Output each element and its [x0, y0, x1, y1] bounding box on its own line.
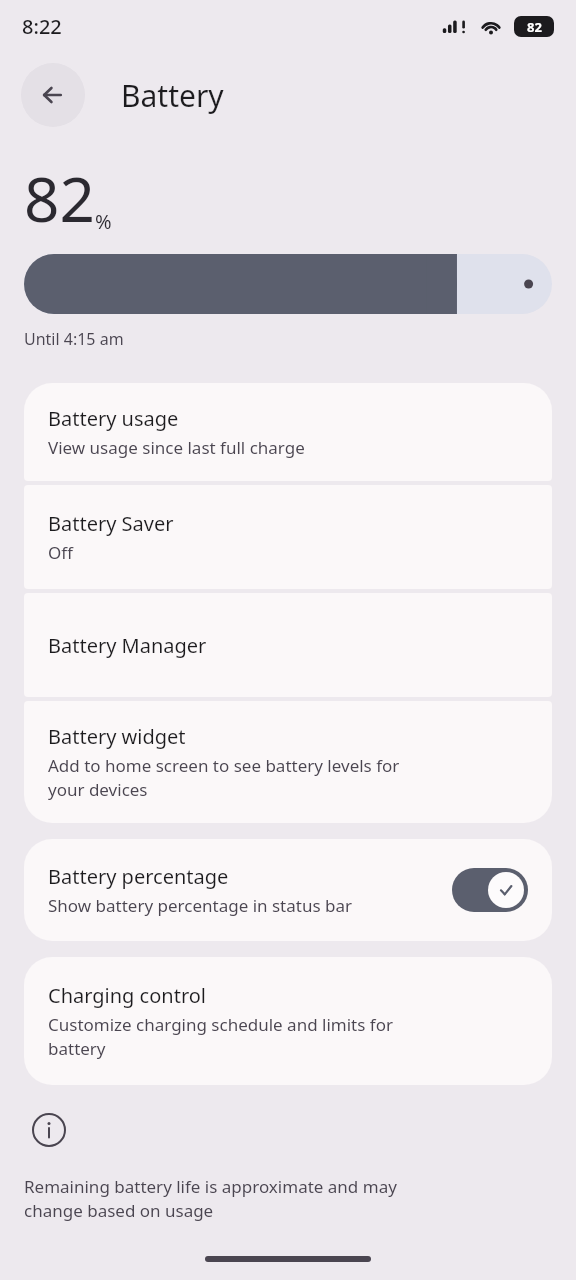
- button[interactable]: Battery widget: [24, 701, 552, 823]
- staticText: Battery widget: [48, 723, 186, 750]
- button[interactable]: Back: [21, 63, 85, 127]
- staticText: 82: [527, 18, 542, 36]
- button[interactable]: Battery usage: [24, 383, 552, 481]
- staticText: Battery usage: [48, 405, 179, 432]
- button[interactable]: Battery Saver: [24, 485, 552, 589]
- staticText: 8:22: [22, 13, 62, 40]
- staticText: Charging control: [48, 982, 206, 1009]
- staticText: Battery: [121, 75, 224, 116]
- staticText: Remaining battery life is approximate an…: [24, 1175, 397, 1222]
- staticText: Battery percentage: [48, 863, 229, 890]
- staticText: Customize charging schedule and limits f…: [48, 1013, 393, 1060]
- button[interactable]: Battery percentage toggle: [452, 868, 528, 912]
- staticText: Until 4:15 am: [24, 328, 124, 350]
- staticText: Show battery percentage in status bar: [48, 894, 352, 917]
- staticText: Battery Manager: [48, 632, 207, 659]
- button[interactable]: Charging control: [24, 957, 552, 1085]
- button[interactable]: Battery Manager: [24, 593, 552, 697]
- staticText: Add to home screen to see battery levels…: [48, 754, 400, 801]
- staticText: View usage since last full charge: [48, 436, 305, 459]
- staticText: %: [95, 208, 112, 235]
- staticText: Off: [48, 541, 73, 564]
- button[interactable]: Battery percentage: [24, 839, 552, 941]
- staticText: Battery Saver: [48, 510, 174, 537]
- staticText: 82: [24, 156, 95, 240]
